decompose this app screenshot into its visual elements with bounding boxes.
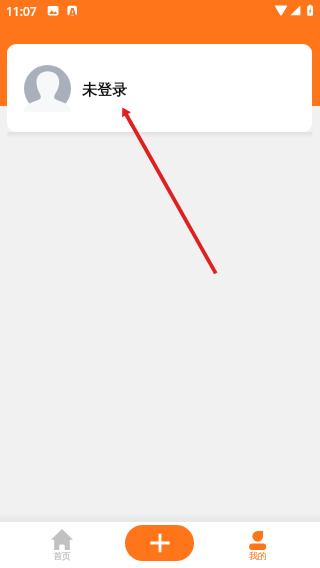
button[interactable]: 首页 [35, 529, 89, 568]
staticText: 未登录 [82, 81, 127, 100]
staticText: 首页 [53, 550, 71, 561]
button[interactable]: 我的 [231, 529, 285, 568]
staticText: 11:07 [6, 3, 37, 19]
staticText: A [69, 6, 76, 16]
staticText: 我的 [249, 550, 267, 561]
button[interactable]: 未登录 [7, 44, 312, 132]
button[interactable]: Add [125, 525, 194, 561]
